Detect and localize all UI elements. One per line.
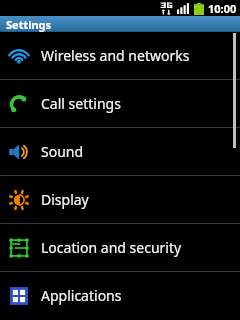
staticText: Applications [41,286,122,305]
button[interactable]: Sound [0,128,240,175]
staticText: 10:00 [208,1,237,16]
staticText: Settings [6,17,52,32]
staticText: Call settings [41,94,121,113]
button[interactable]: Call settings [0,80,240,127]
staticText: Location and security [41,238,182,257]
button[interactable]: Wireless and networks [0,32,240,79]
button[interactable]: Applications [0,272,240,319]
button[interactable]: Display [0,176,240,223]
button[interactable]: Location and security [0,224,240,271]
staticText: Wireless and networks [41,46,190,65]
staticText: Display [41,190,89,209]
staticText: Sound [41,142,84,161]
